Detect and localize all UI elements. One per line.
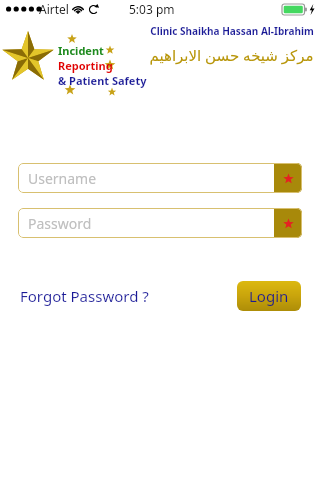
staticText: Reporting: [58, 58, 113, 73]
button[interactable]: Username: [18, 163, 302, 193]
staticText: Airtel: [39, 1, 69, 17]
staticText: Forgot Password ?: [20, 286, 149, 306]
staticText: & Patient Safety: [58, 73, 147, 88]
button[interactable]: Forgot Password ?: [18, 282, 151, 310]
other: Required field: [274, 208, 302, 238]
staticText: Login: [249, 286, 289, 306]
staticText: Incident: [58, 43, 104, 58]
other: Required field: [274, 163, 302, 193]
staticText: 5:03 pm: [129, 1, 175, 17]
button[interactable]: Password: [18, 208, 302, 238]
staticText: Username: [28, 169, 97, 188]
staticText: مركز شيخه حسن الابراهيم: [149, 45, 314, 65]
staticText: Clinic Shaikha Hassan Al-Ibrahim: [150, 24, 314, 38]
staticText: Password: [28, 214, 92, 233]
button[interactable]: Login: [237, 281, 301, 311]
